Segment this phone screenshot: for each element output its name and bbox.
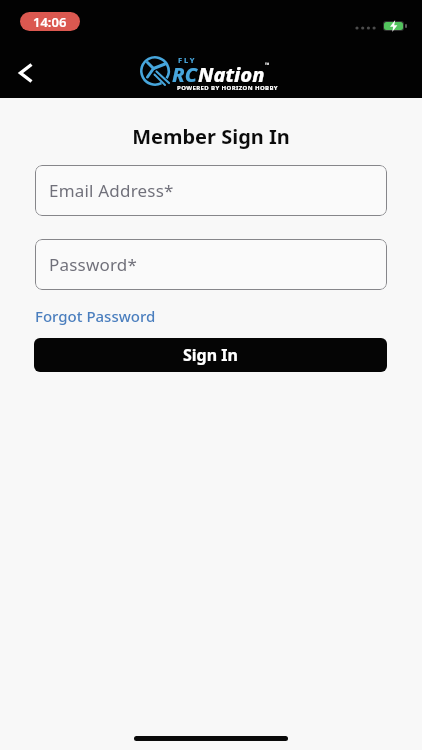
staticText: Member Sign In [0,123,422,150]
button[interactable]: Password* [35,239,387,290]
button[interactable] [4,54,48,92]
staticText: Password* [49,253,138,276]
staticText: POWERED BY HORIZON HOBBY [177,84,279,92]
staticText: Nation [198,61,265,88]
staticText: Email Address* [49,179,174,202]
staticText: 14:06 [33,13,67,31]
staticText: RC [172,61,198,88]
button[interactable]: Forgot Password [35,306,156,326]
staticText: Sign In [183,344,238,366]
staticText: FLY [178,55,197,65]
button[interactable]: Email Address* [35,165,387,216]
staticText: Forgot Password [35,306,156,326]
staticText: ™ [265,61,270,69]
button[interactable]: Sign In [34,338,387,372]
